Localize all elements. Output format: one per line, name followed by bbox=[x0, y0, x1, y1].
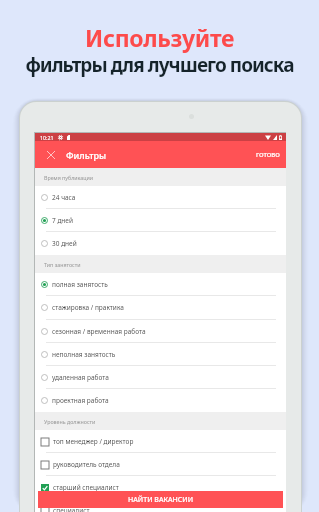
staticText: специалист bbox=[53, 506, 90, 512]
button[interactable]: сезонная / временная работа bbox=[35, 320, 286, 343]
staticText: Уровень должности bbox=[44, 418, 96, 425]
staticText: 24 часа bbox=[52, 193, 76, 202]
button[interactable]: топ менеджер / директор bbox=[35, 430, 286, 453]
button[interactable]: руководитель отдела bbox=[35, 453, 286, 476]
staticText: старший специалист bbox=[53, 483, 119, 492]
staticText: Фильтры bbox=[66, 149, 107, 161]
staticText: 7 дней bbox=[52, 216, 73, 225]
button[interactable]: стажировка / практика bbox=[35, 296, 286, 319]
staticText: фильтры для лучшего поиска bbox=[25, 52, 294, 78]
staticText: топ менеджер / директор bbox=[53, 437, 134, 446]
button[interactable]: старший специалист bbox=[35, 476, 286, 499]
staticText: Тип занятости bbox=[44, 261, 81, 268]
staticText: проектная работа bbox=[52, 396, 109, 405]
staticText: руководитель отдела bbox=[53, 460, 120, 469]
button[interactable]: 30 дней bbox=[35, 232, 286, 255]
button[interactable]: 7 дней bbox=[35, 209, 286, 232]
staticText: полная занятость bbox=[52, 280, 108, 289]
button[interactable]: неполная занятость bbox=[35, 343, 286, 366]
staticText: Время публикации bbox=[44, 174, 94, 181]
staticText: стажировка / практика bbox=[52, 303, 124, 312]
staticText: НАЙТИ ВАКАНСИИ bbox=[128, 495, 194, 505]
button[interactable]: полная занятость bbox=[35, 273, 286, 296]
staticText: Используйте bbox=[85, 22, 235, 53]
button[interactable]: удаленная работа bbox=[35, 366, 286, 389]
button[interactable]: ГОТОВО bbox=[250, 141, 286, 168]
button[interactable]: 24 часа bbox=[35, 186, 286, 209]
button[interactable]: проектная работа bbox=[35, 389, 286, 412]
staticText: удаленная работа bbox=[52, 373, 109, 382]
staticText: ГОТОВО bbox=[256, 151, 280, 159]
staticText: сезонная / временная работа bbox=[52, 327, 146, 336]
staticText: 30 дней bbox=[52, 239, 77, 248]
button[interactable]: специалист bbox=[35, 499, 286, 512]
staticText: 10:21 bbox=[40, 134, 54, 141]
button[interactable]: Закрыть bbox=[35, 141, 66, 168]
button[interactable]: НАЙТИ ВАКАНСИИ bbox=[38, 491, 283, 508]
staticText: неполная занятость bbox=[52, 350, 116, 359]
